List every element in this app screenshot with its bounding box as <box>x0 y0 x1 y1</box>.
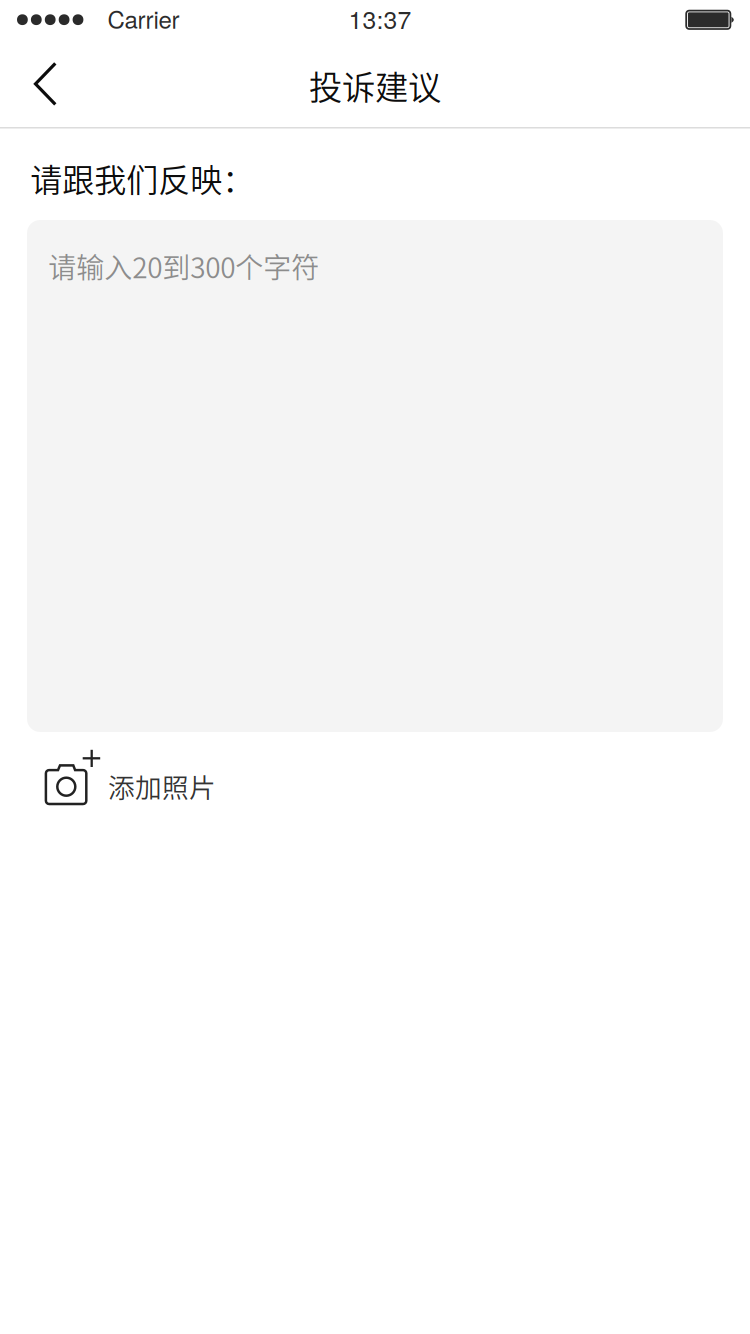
staticText: 13:37 <box>348 0 411 36</box>
button[interactable]: 返回 <box>0 40 94 127</box>
staticText: Carrier <box>107 1 179 36</box>
button[interactable]: 添加照片 <box>45 745 315 821</box>
staticText: 请输入20到300个字符 <box>48 246 319 286</box>
button[interactable]: 请输入20到300个字符 <box>27 220 723 732</box>
staticText: 投诉建议 <box>309 61 441 109</box>
staticText: 请跟我们反映： <box>30 155 254 201</box>
staticText: 添加照片 <box>108 766 216 805</box>
